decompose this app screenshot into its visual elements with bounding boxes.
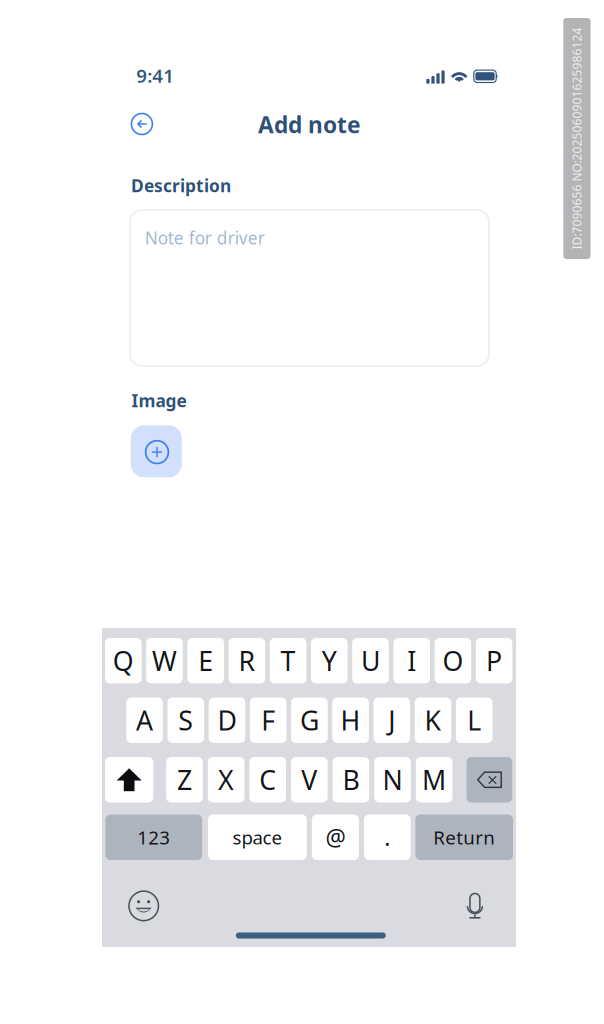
button[interactable]: I [393,638,430,683]
staticText: @ [325,822,345,852]
staticText: F [261,702,275,738]
staticText: . [384,822,390,852]
button[interactable]: Z [166,757,203,802]
button[interactable]: 123 [105,814,202,860]
button[interactable]: Y [311,638,348,683]
staticText: I [407,643,416,678]
button[interactable]: L [456,697,492,743]
staticText: M [422,762,446,797]
staticText: J [388,702,395,738]
button[interactable]: Back [122,104,162,144]
button[interactable]: Add image [131,425,182,477]
button[interactable]: F [250,697,286,743]
staticText: ID:7090656 NO:2025060901625986124 [466,130,604,146]
staticText: Description [131,174,231,197]
button[interactable]: D [209,697,245,743]
staticText: space [232,825,282,850]
button[interactable]: Shift [105,757,153,802]
staticText: V [301,762,317,797]
button[interactable]: O [435,638,471,683]
staticText: Image [131,389,186,412]
staticText: 123 [137,825,170,850]
staticText: Return [433,825,495,850]
button[interactable]: Delete [466,757,512,802]
staticText: E [198,643,213,678]
staticText: A [136,702,153,738]
button[interactable]: space [208,814,307,860]
button[interactable]: J [373,697,410,743]
staticText: C [259,762,276,797]
staticText: G [300,702,319,738]
staticText: S [178,702,193,738]
button[interactable]: . [364,814,411,860]
button[interactable]: B [333,757,369,802]
button[interactable]: K [415,697,451,743]
button[interactable]: E [187,638,224,683]
staticText: P [486,643,502,678]
button[interactable]: T [270,638,306,683]
staticText: Q [113,643,134,678]
staticText: 9:41 [136,63,174,88]
button[interactable]: P [476,638,512,683]
button[interactable]: W [146,638,183,683]
button[interactable]: N [374,757,411,802]
staticText: D [217,702,236,738]
button[interactable]: G [291,697,328,743]
staticText: H [341,702,361,738]
staticText: Add note [258,109,361,139]
button[interactable]: Emoji [124,888,164,924]
button[interactable]: U [352,638,389,683]
staticText: B [342,762,359,797]
button[interactable]: Q [105,638,142,683]
button[interactable]: Dictate [458,889,492,923]
staticText: K [424,702,441,738]
staticText: R [238,643,255,678]
button[interactable]: X [208,757,244,802]
button[interactable]: R [229,638,265,683]
button[interactable]: @ [312,814,359,860]
staticText: U [361,643,380,678]
button[interactable]: C [249,757,286,802]
staticText: L [467,702,481,738]
staticText: T [281,643,296,678]
staticText: N [382,762,402,797]
button[interactable]: A [126,697,163,743]
staticText: Z [177,762,192,797]
button[interactable]: S [167,697,204,743]
button[interactable]: M [416,757,452,802]
staticText: X [218,762,234,797]
staticText: Note for driver [145,226,265,249]
staticText: O [442,643,463,678]
button[interactable]: V [291,757,328,802]
staticText: W [152,643,177,678]
staticText: Y [322,643,337,678]
button[interactable]: Return [415,814,513,860]
button[interactable]: H [332,697,369,743]
